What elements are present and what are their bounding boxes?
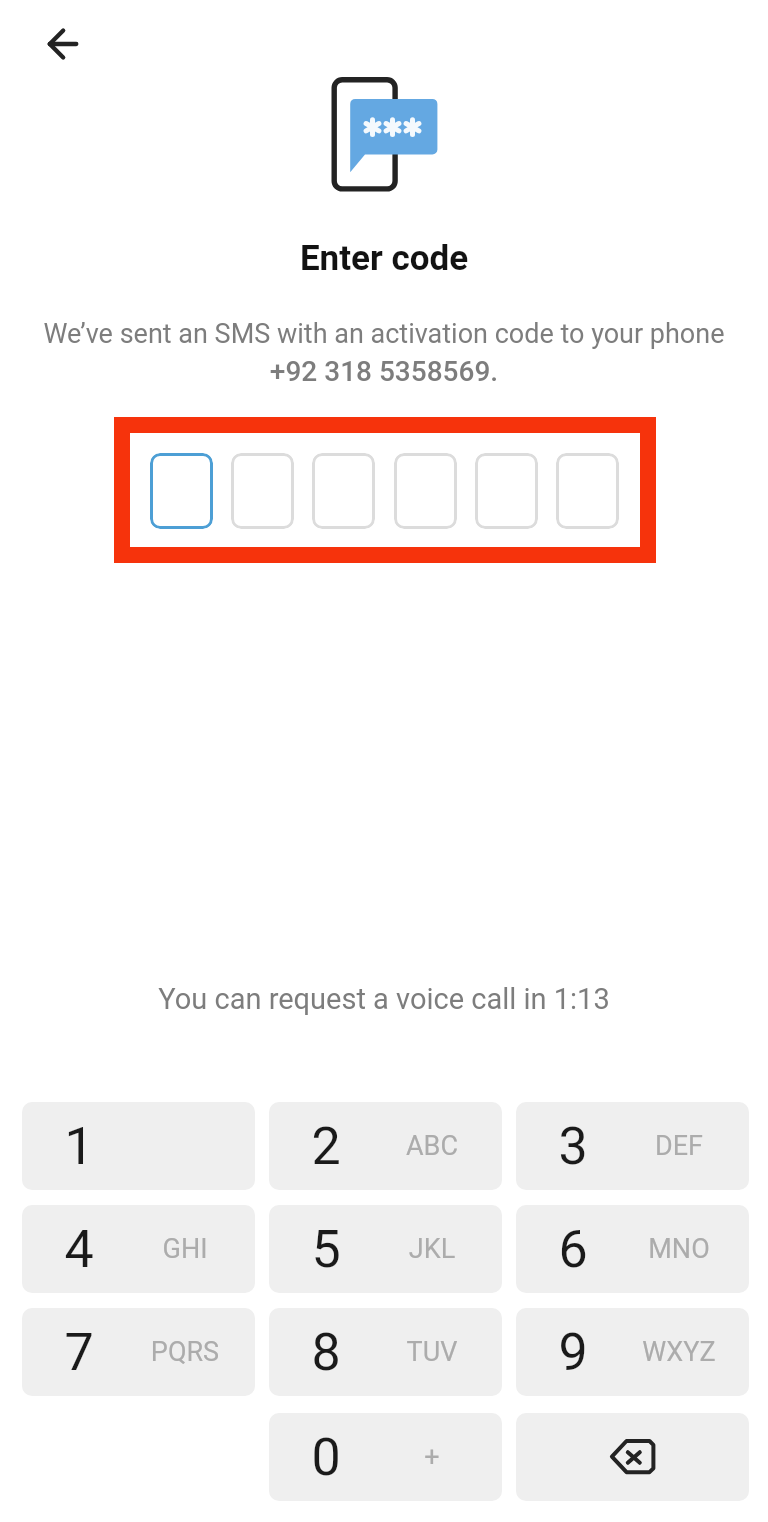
button[interactable]: 3 — [516, 1102, 749, 1190]
staticText: ABC — [362, 1130, 502, 1162]
staticText: MNO — [609, 1233, 749, 1265]
button[interactable]: 4 — [22, 1205, 255, 1293]
button[interactable]: 6 — [516, 1205, 749, 1293]
staticText: + — [362, 1441, 502, 1473]
staticText: 4 — [22, 1219, 136, 1280]
button[interactable]: Code digit 5 — [475, 453, 538, 529]
button[interactable]: Code digit 1 — [150, 453, 213, 529]
button[interactable]: Code digit 2 — [231, 453, 294, 529]
staticText: 6 — [516, 1219, 630, 1280]
button[interactable]: 0 — [269, 1413, 502, 1501]
button[interactable]: Code digit 3 — [312, 453, 375, 529]
staticText: JKL — [362, 1233, 502, 1265]
staticText: We’ve sent an SMS with an activation cod… — [0, 318, 768, 350]
button[interactable]: Code digit 6 — [556, 453, 619, 529]
staticText: +92 318 5358569. — [0, 355, 768, 388]
staticText: 1 — [22, 1116, 136, 1177]
button[interactable]: 9 — [516, 1308, 749, 1396]
staticText: 3 — [516, 1116, 630, 1177]
staticText: PQRS — [115, 1336, 255, 1368]
button[interactable]: Code digit 4 — [394, 453, 457, 529]
button[interactable]: Back — [30, 12, 94, 76]
staticText: 0 — [269, 1427, 383, 1488]
button[interactable]: 5 — [269, 1205, 502, 1293]
staticText: 9 — [516, 1322, 630, 1383]
staticText: 5 — [269, 1219, 383, 1280]
staticText: 8 — [269, 1322, 383, 1383]
staticText: GHI — [115, 1233, 255, 1265]
button[interactable]: 7 — [22, 1308, 255, 1396]
staticText: TUV — [362, 1336, 502, 1368]
button[interactable]: 1 — [22, 1102, 255, 1190]
staticText: WXYZ — [609, 1336, 749, 1368]
button[interactable]: 2 — [269, 1102, 502, 1190]
staticText: DEF — [609, 1130, 749, 1162]
button[interactable]: You can request a voice call in 1:13 — [0, 982, 768, 1016]
staticText: 2 — [269, 1116, 383, 1177]
staticText: Enter code — [0, 238, 768, 279]
button[interactable]: 8 — [269, 1308, 502, 1396]
button[interactable]: Backspace — [516, 1413, 749, 1501]
staticText: 7 — [22, 1322, 136, 1383]
